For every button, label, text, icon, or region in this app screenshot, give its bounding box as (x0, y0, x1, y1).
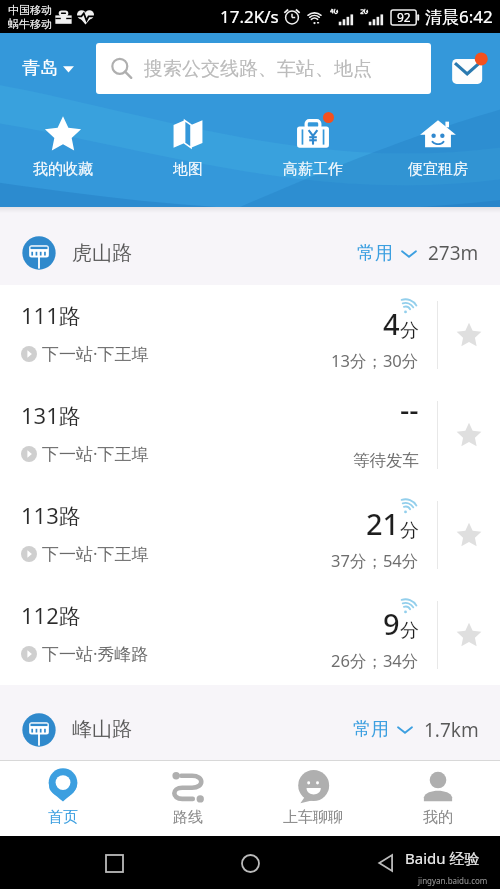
staticText: 青岛 (22, 57, 58, 80)
staticText: 分 (400, 619, 419, 643)
button[interactable]: 便宜租房 (375, 115, 500, 177)
staticText: 下一站·秀峰路 (42, 642, 149, 665)
staticText: 虎山路 (72, 241, 132, 266)
staticText: 下一站·下王埠 (42, 442, 149, 465)
staticText: 中国移动 (8, 3, 52, 17)
staticText: 地图 (173, 160, 203, 177)
staticText: 我的 (423, 808, 453, 827)
staticText: Baidu 经验 (405, 848, 480, 868)
staticText: 首页 (48, 808, 78, 827)
button[interactable]: 青岛 (22, 43, 74, 94)
staticText: 清晨6:42 (425, 5, 493, 28)
staticText: 分 (400, 519, 419, 543)
button[interactable]: 最近任务 (92, 841, 136, 885)
staticText: 9 (383, 604, 400, 643)
staticText: 峰山路 (72, 717, 132, 742)
staticText: 等待发车 (353, 450, 419, 471)
button[interactable]: 收藏 (438, 285, 500, 385)
staticText: 92 (397, 9, 411, 25)
staticText: 17.2K/s (220, 5, 279, 28)
button[interactable]: 收藏 (438, 585, 500, 685)
button[interactable]: 返回 (364, 841, 408, 885)
staticText: 111路 (21, 300, 81, 330)
staticText: 273m (428, 240, 479, 266)
staticText: 高薪工作 (283, 160, 343, 177)
button[interactable]: 虎山路 (0, 207, 500, 285)
staticText: 分 (400, 319, 419, 343)
staticText: 26分；34分 (331, 649, 419, 672)
button[interactable]: 常用 (353, 718, 412, 741)
button[interactable]: 峰山路 (0, 685, 500, 760)
staticText: 13分；30分 (331, 349, 419, 372)
staticText: 1.7km (424, 717, 479, 743)
staticText: 37分；54分 (331, 549, 419, 572)
button[interactable]: 112路 (0, 585, 500, 685)
staticText: 便宜租房 (408, 160, 468, 177)
button[interactable]: 收藏 (438, 485, 500, 585)
button[interactable]: 113路 (0, 485, 500, 585)
button[interactable]: 路线 (125, 761, 250, 836)
button[interactable]: 地图 (125, 115, 250, 177)
button[interactable]: 收藏 (438, 385, 500, 485)
staticText: 搜索公交线路、车站、地点 (144, 57, 372, 81)
button[interactable]: 131路 (0, 385, 500, 485)
staticText: 21 (366, 504, 400, 543)
staticText: 我的收藏 (33, 160, 93, 177)
staticText: 112路 (21, 600, 81, 630)
staticText: 131路 (21, 400, 81, 430)
staticText: 下一站·下王埠 (42, 542, 149, 565)
button[interactable]: 我的收藏 (0, 115, 125, 177)
staticText: jingyan.baidu.com (418, 875, 488, 886)
staticText: 113路 (21, 500, 81, 530)
button[interactable]: 主页 (228, 841, 272, 885)
staticText: 4 (383, 304, 400, 343)
button[interactable]: 111路 (0, 285, 500, 385)
staticText: 下一站·下王埠 (42, 342, 149, 365)
staticText: 常用 (357, 242, 393, 265)
button[interactable]: 消息 (449, 48, 491, 90)
staticText: -- (400, 389, 419, 428)
staticText: 常用 (353, 718, 389, 741)
button[interactable]: 常用 (357, 242, 416, 265)
staticText: 路线 (173, 808, 203, 827)
staticText: 蜗牛移动 (8, 17, 52, 31)
button[interactable]: 上车聊聊 (250, 761, 375, 836)
button[interactable]: 我的 (375, 761, 500, 836)
staticText: 上车聊聊 (283, 808, 343, 827)
button[interactable]: 搜索公交线路、车站、地点 (96, 43, 431, 94)
button[interactable]: 首页 (0, 761, 125, 836)
button[interactable]: 高薪工作 (250, 115, 375, 177)
